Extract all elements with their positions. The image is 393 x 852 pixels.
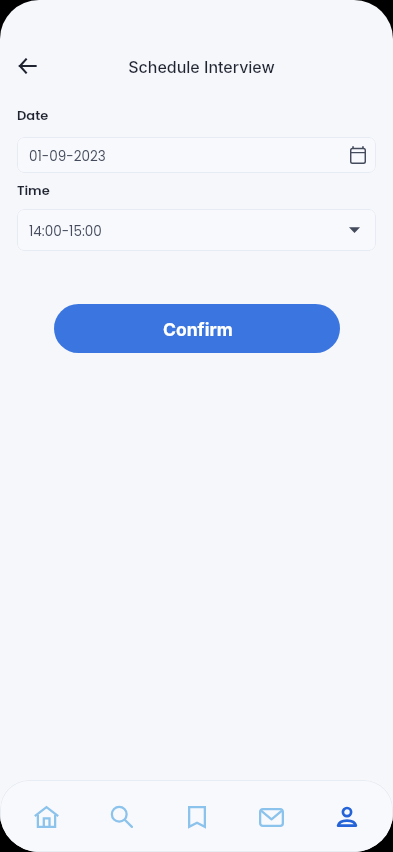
staticText: Confirm	[163, 319, 233, 340]
staticText: Time	[17, 181, 50, 199]
button[interactable]: 01-09-2023	[17, 137, 376, 173]
staticText: 14:00-15:00	[29, 222, 102, 241]
staticText: 01-09-2023	[29, 147, 106, 166]
staticText: Schedule Interview	[5, 57, 393, 76]
button[interactable]: Back	[9, 48, 45, 84]
button[interactable]: Messages	[234, 789, 309, 845]
button[interactable]: Home	[9, 789, 84, 845]
button[interactable]: Profile	[309, 789, 384, 845]
button[interactable]: 14:00-15:00	[17, 209, 376, 251]
button[interactable]: Search	[84, 789, 159, 845]
staticText: Date	[17, 106, 49, 124]
button[interactable]: Saved	[159, 789, 234, 845]
button[interactable]: Confirm	[54, 304, 340, 353]
